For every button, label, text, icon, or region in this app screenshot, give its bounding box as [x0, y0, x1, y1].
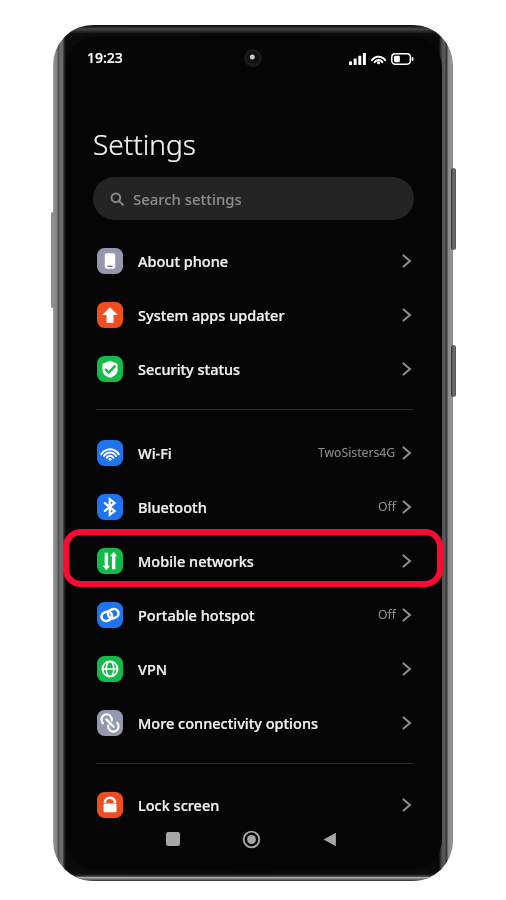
staticText: Settings: [93, 125, 196, 163]
staticText: Off: [378, 498, 396, 515]
button[interactable]: Home: [231, 819, 271, 859]
staticText: TwoSisters4G: [318, 444, 396, 461]
button[interactable]: Bluetooth: [66, 480, 442, 533]
button[interactable]: Search settings: [93, 177, 414, 220]
button[interactable]: More connectivity options: [66, 696, 442, 749]
staticText: Off: [378, 606, 396, 623]
button[interactable]: About phone: [66, 234, 442, 287]
staticText: Portable hotspot: [138, 605, 255, 625]
button[interactable]: VPN: [66, 642, 442, 695]
button[interactable]: Security status: [66, 342, 442, 395]
staticText: Search settings: [133, 189, 242, 209]
staticText: System apps updater: [138, 305, 285, 325]
button[interactable]: Recents: [153, 819, 193, 859]
staticText: Security status: [138, 359, 241, 379]
button[interactable]: Back: [310, 819, 350, 859]
staticText: Mobile networks: [138, 551, 254, 571]
staticText: VPN: [138, 659, 168, 679]
staticText: Lock screen: [138, 795, 220, 815]
button[interactable]: Lock screen: [66, 778, 442, 831]
staticText: About phone: [138, 251, 229, 271]
button[interactable]: System apps updater: [66, 288, 442, 341]
button[interactable]: Portable hotspot: [66, 588, 442, 641]
staticText: More connectivity options: [138, 713, 319, 733]
staticText: Wi-Fi: [138, 443, 172, 463]
button[interactable]: Mobile networks: [66, 534, 442, 587]
staticText: 19:23: [87, 48, 123, 67]
staticText: Bluetooth: [138, 497, 207, 517]
button[interactable]: Wi-Fi: [66, 426, 442, 479]
